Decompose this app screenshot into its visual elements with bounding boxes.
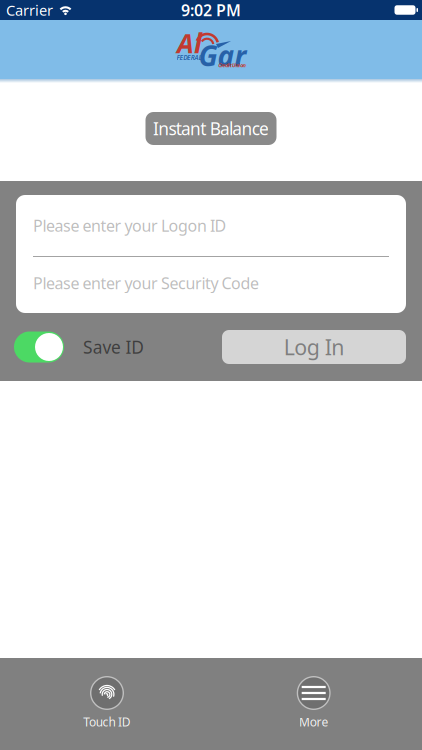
button[interactable]: Log In — [222, 330, 406, 364]
button[interactable]: Instant Balance — [145, 112, 276, 145]
staticText: Credit Union — [218, 62, 246, 69]
staticText: 9:02 PM — [181, 0, 241, 21]
button[interactable]: Save ID — [14, 331, 64, 362]
staticText: More — [299, 714, 328, 730]
staticText: Please enter your Security Code — [33, 272, 259, 294]
staticText: Carrier — [6, 0, 53, 20]
staticText: Touch ID — [83, 714, 131, 730]
staticText: Log In — [284, 333, 344, 361]
staticText: Al — [177, 25, 202, 61]
button[interactable]: Touch ID — [0, 658, 211, 750]
staticText: Please enter your Logon ID — [33, 215, 226, 236]
staticText: Instant Balance — [153, 117, 269, 140]
staticText: FEDERAL — [177, 53, 201, 62]
staticText: Gar — [198, 37, 246, 74]
staticText: Save ID — [83, 335, 144, 358]
button[interactable]: More — [211, 658, 422, 750]
